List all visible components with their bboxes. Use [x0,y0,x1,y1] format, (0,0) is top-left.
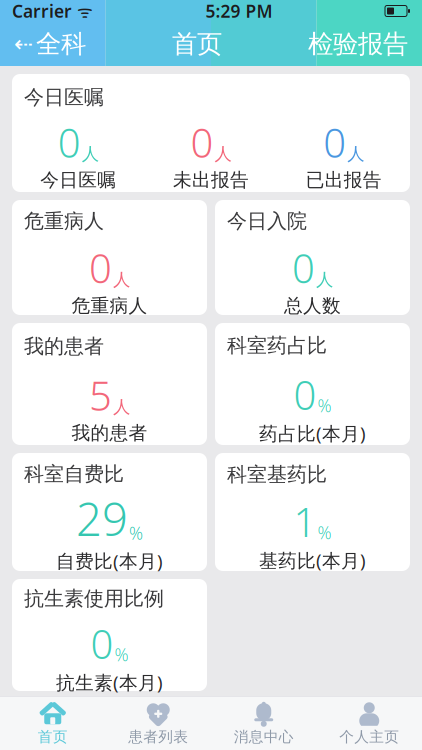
staticText: Carrier [12,0,72,22]
staticText: 消息中心 [234,728,294,746]
staticText: 5 [89,369,112,422]
staticText: 首页 [38,728,68,746]
staticText: 患者列表 [128,728,188,746]
staticText: % [317,521,331,544]
staticText: 今日医嘱 [40,169,116,192]
staticText: 人 [347,143,364,165]
staticText: 人 [82,143,99,165]
staticText: 抗生素使用比例 [24,586,164,611]
staticText: 5:29 PM [205,0,272,22]
staticText: 基药比(本月) [259,548,366,573]
staticText: 未出报告 [173,169,249,192]
staticText: ᯤ [72,0,93,22]
staticText: 科室药占比 [227,333,327,358]
staticText: 今日医嘱 [24,85,104,110]
button[interactable]: 检验报告 [294,22,422,65]
staticText: 0 [58,116,81,169]
staticText: 0 [293,368,316,421]
staticText: 人 [316,269,333,290]
staticText: 科室自费比 [24,462,124,486]
staticText: 药占比(本月) [259,421,366,446]
staticText: 1 [293,495,316,548]
staticText: 今日入院 [227,209,307,233]
staticText: % [114,643,128,666]
button[interactable]: ⇠ [0,22,100,65]
staticText: 全科 [36,28,86,59]
staticText: 0 [190,116,213,169]
staticText: 0 [323,116,346,169]
staticText: 我的患者 [24,334,104,359]
staticText: 人 [113,269,130,290]
staticText: 0 [292,241,315,294]
staticText: 29 [76,488,128,548]
staticText: 自费比(本月) [56,548,163,573]
staticText: 0 [89,241,112,294]
staticText: 危重病人 [24,209,104,233]
button[interactable]: 患者列表 [105,697,211,750]
staticText: 科室基药比 [227,462,327,487]
staticText: 抗生素(本月) [56,670,163,695]
button[interactable]: 首页 [0,697,105,750]
staticText: 0 [90,617,113,670]
staticText: ⇠ [14,31,33,57]
button[interactable]: 消息中心 [211,697,316,750]
staticText: 我的患者 [71,422,147,445]
staticText: % [317,394,331,417]
staticText: 首页 [172,28,222,59]
staticText: 危重病人 [71,294,147,317]
button[interactable]: 个人主页 [316,697,422,750]
staticText: 检验报告 [308,28,408,59]
staticText: 已出报告 [306,169,382,192]
staticText: 人 [113,396,130,418]
staticText: 人 [214,143,231,165]
staticText: 总人数 [284,294,341,317]
staticText: 个人主页 [339,728,399,746]
staticText: % [129,521,143,544]
